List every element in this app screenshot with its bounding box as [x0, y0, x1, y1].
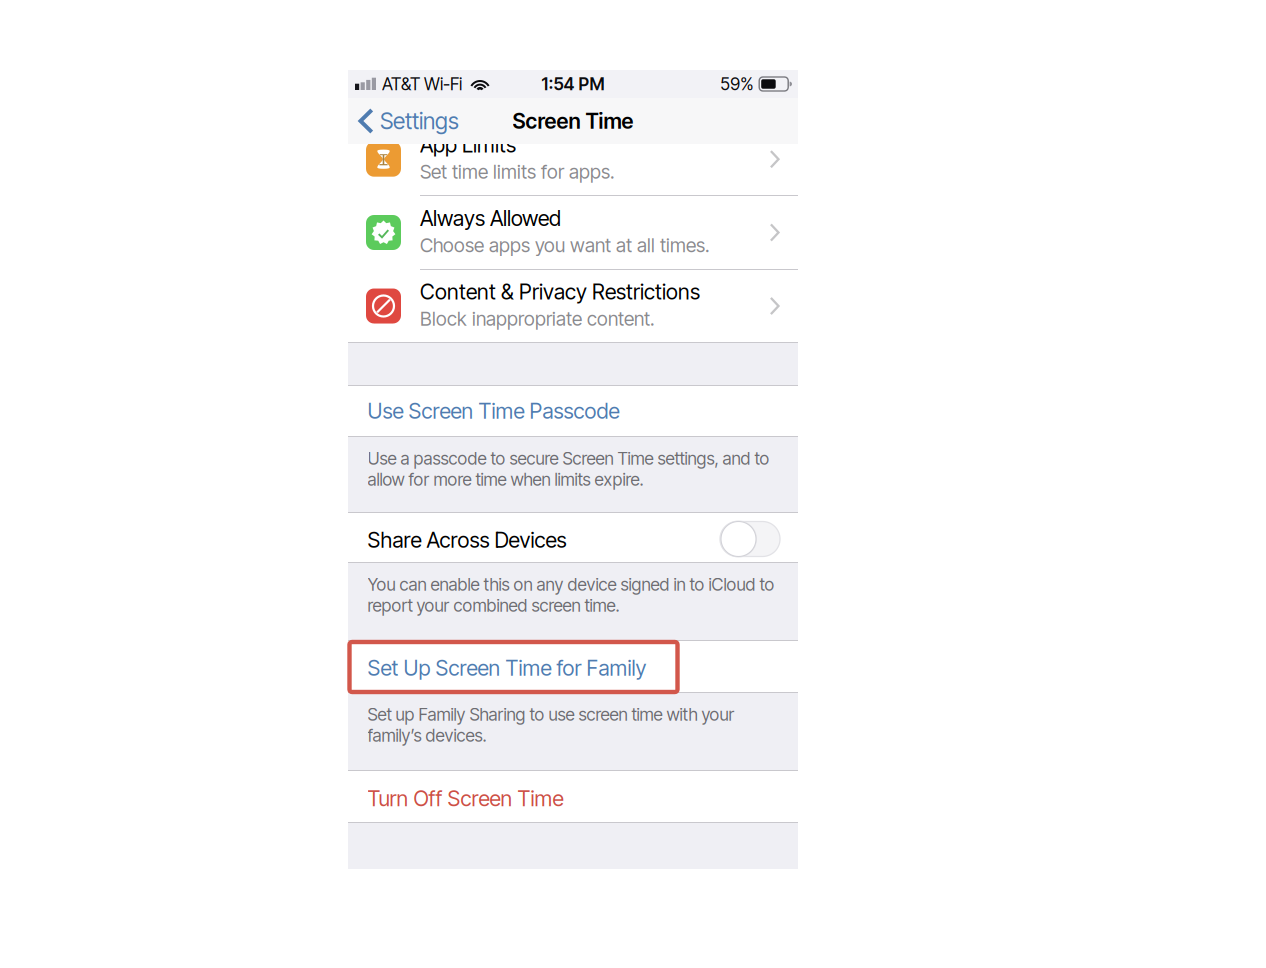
button[interactable]: Content & Privacy Restrictions — [348, 270, 798, 342]
staticText: Set up Family Sharing to use screen time… — [367, 704, 734, 746]
staticText: 1:54 PM — [541, 73, 604, 94]
staticText: 59% — [720, 73, 753, 94]
staticText: Settings — [380, 107, 459, 135]
staticText: Use Screen Time Passcode — [367, 398, 619, 424]
staticText: Use a passcode to secure Screen Time set… — [367, 448, 769, 490]
staticText: Screen Time — [512, 108, 633, 134]
staticText: You can enable this on any device signed… — [367, 574, 774, 616]
button[interactable]: Settings — [348, 98, 498, 144]
staticText: Turn Off Screen Time — [367, 786, 563, 811]
button[interactable]: Set Up Screen Time for Family — [348, 641, 798, 692]
button[interactable]: App Limits — [348, 144, 798, 195]
button[interactable]: Turn Off Screen Time — [348, 771, 798, 822]
staticText: App Limits — [420, 132, 516, 158]
staticText: Content & Privacy Restrictions — [420, 279, 700, 304]
staticText: Set time limits for apps. — [420, 160, 615, 183]
button[interactable]: Use Screen Time Passcode — [348, 386, 798, 436]
staticText: Always Allowed — [420, 205, 561, 231]
staticText: Choose apps you want at all times. — [420, 233, 710, 257]
staticText: Block inappropriate content. — [420, 307, 655, 330]
button[interactable]: Share Across Devices — [348, 513, 798, 562]
staticText: Set Up Screen Time for Family — [367, 655, 646, 681]
button[interactable]: Always Allowed — [348, 196, 798, 269]
staticText: AT&T Wi-Fi — [382, 73, 462, 94]
staticText: Share Across Devices — [367, 527, 566, 553]
